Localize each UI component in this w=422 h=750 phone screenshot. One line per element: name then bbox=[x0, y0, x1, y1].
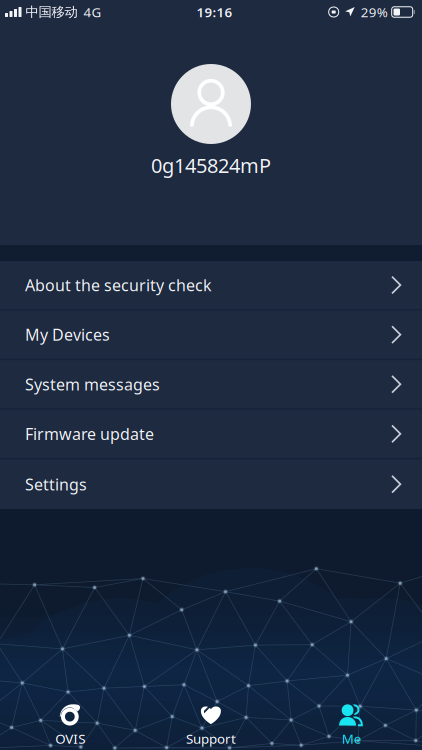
button[interactable]: Support bbox=[141, 700, 281, 750]
staticText: Support bbox=[186, 730, 236, 747]
staticText: Firmware update bbox=[25, 423, 154, 444]
button[interactable]: About the security check bbox=[0, 261, 422, 311]
staticText: 中国移动 bbox=[25, 4, 77, 20]
button[interactable]: OVIS bbox=[0, 700, 141, 750]
staticText: 29% bbox=[361, 3, 388, 21]
staticText: Me bbox=[342, 730, 362, 747]
staticText: 0g145824mP bbox=[151, 152, 271, 179]
button[interactable]: Firmware update bbox=[0, 410, 422, 459]
staticText: 4G bbox=[83, 3, 101, 21]
staticText: About the security check bbox=[25, 274, 212, 296]
staticText: 19:16 bbox=[197, 3, 233, 21]
button[interactable]: Settings bbox=[0, 459, 422, 509]
button[interactable]: My Devices bbox=[0, 311, 422, 360]
staticText: System messages bbox=[25, 374, 160, 395]
staticText: My Devices bbox=[25, 324, 110, 345]
button[interactable]: Me bbox=[281, 700, 422, 750]
staticText: Settings bbox=[25, 474, 87, 495]
staticText: OVIS bbox=[55, 730, 85, 747]
button[interactable]: System messages bbox=[0, 360, 422, 410]
